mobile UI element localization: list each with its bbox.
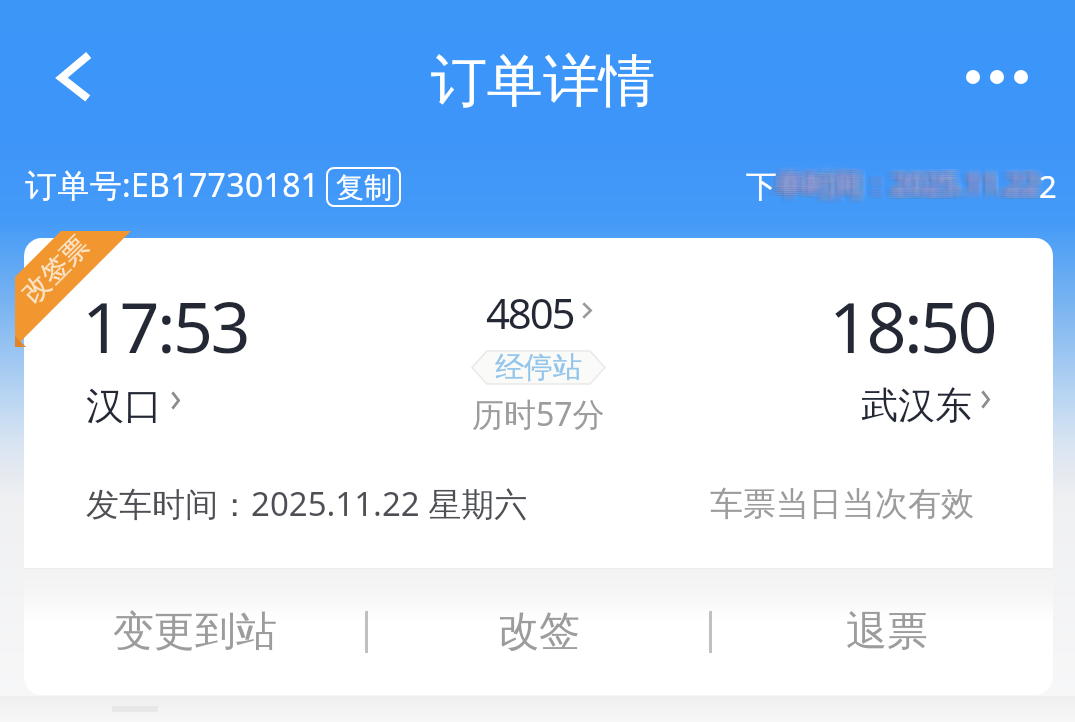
staticText: 单时间：2025.11.22 19:5 — [771, 165, 1043, 209]
staticText: 单时间：2025.11.22 19:5 — [778, 166, 1050, 210]
staticText: 单时间：2025.11.22 19:5 — [778, 161, 1050, 205]
staticText: 单时间：2025.11.22 19:5 — [776, 162, 1048, 206]
staticText: 单时间：2025.11.22 19:5 — [779, 162, 1051, 206]
staticText: 单时间：2025.11.22 19:5 — [773, 163, 1045, 207]
staticText: 单时间：2025.11.22 19:5 — [773, 159, 1045, 203]
staticText: 单时间：2025.11.22 19:5 — [773, 168, 1045, 212]
staticText: 单时间：2025.11.22 19:5 — [769, 166, 1041, 210]
staticText: 单时间：2025.11.22 19:5 — [779, 164, 1051, 208]
staticText: 单时间：2025.11.22 19:5 — [781, 159, 1053, 203]
staticText: 18:50 — [829, 278, 995, 373]
staticText: 单时间：2025.11.22 19:5 — [775, 161, 1047, 205]
staticText: 单时间：2025.11.22 19:5 — [772, 162, 1044, 206]
staticText: 单时间：2025.11.22 19:5 — [771, 161, 1043, 205]
staticText: 订单详情 — [431, 46, 655, 117]
button[interactable]: 改签 — [368, 569, 709, 695]
button[interactable]: 退票 — [712, 569, 1053, 695]
staticText: 单时间：2025.11.22 19:5 — [778, 159, 1050, 203]
staticText: 单时间：2025.11.22 19:5 — [778, 168, 1050, 212]
staticText: 单时间：2025.11.22 19:5 — [775, 162, 1047, 206]
staticText: 单时间：2025.11.22 19:5 — [780, 161, 1052, 205]
staticText: 单时间：2025.11.22 19:5 — [768, 162, 1040, 206]
staticText: 单时间：2025.11.22 19:5 — [774, 167, 1046, 211]
staticText: 单时间：2025.11.22 19:5 — [779, 167, 1051, 211]
staticText: 单时间：2025.11.22 19:5 — [777, 160, 1049, 204]
staticText: 单时间：2025.11.22 19:5 — [777, 161, 1049, 205]
staticText: 单时间：2025.11.22 19:5 — [776, 163, 1048, 207]
staticText: 2 — [1039, 165, 1057, 207]
staticText: 单时间：2025.11.22 19:5 — [774, 165, 1046, 209]
staticText: 单时间：2025.11.22 19:5 — [771, 163, 1043, 207]
staticText: 单时间：2025.11.22 19:5 — [776, 168, 1048, 212]
staticText: 单时间：2025.11.22 19:5 — [780, 167, 1052, 211]
staticText: 单时间：2025.11.22 19:5 — [772, 161, 1044, 205]
staticText: 单时间：2025.11.22 19:5 — [772, 165, 1044, 209]
staticText: 单时间：2025.11.22 19:5 — [768, 166, 1040, 210]
staticText: 单时间：2025.11.22 19:5 — [770, 165, 1042, 209]
staticText: 单时间：2025.11.22 19:5 — [773, 165, 1045, 209]
staticText: 单时间：2025.11.22 19:5 — [776, 159, 1048, 203]
staticText: 单时间：2025.11.22 19:5 — [770, 168, 1042, 212]
staticText: 单时间：2025.11.22 19:5 — [781, 165, 1053, 209]
button[interactable]: 复制 — [327, 168, 400, 206]
staticText: 单时间：2025.11.22 19:5 — [775, 163, 1047, 207]
staticText: 单时间：2025.11.22 19:5 — [768, 160, 1040, 204]
staticText: 单时间：2025.11.22 19:5 — [780, 168, 1052, 212]
staticText: 单时间：2025.11.22 19:5 — [774, 164, 1046, 208]
staticText: 单时间：2025.11.22 19:5 — [775, 167, 1047, 211]
staticText: 单时间：2025.11.22 19:5 — [776, 167, 1048, 211]
staticText: 变更到站 — [113, 606, 277, 658]
staticText: 单时间：2025.11.22 19:5 — [776, 164, 1048, 208]
staticText: 单时间：2025.11.22 19:5 — [770, 160, 1042, 204]
staticText: 单时间：2025.11.22 19:5 — [769, 168, 1041, 212]
staticText: 单时间：2025.11.22 19:5 — [777, 164, 1049, 208]
staticText: 下 — [746, 167, 777, 206]
staticText: 单时间：2025.11.22 19:5 — [773, 167, 1045, 211]
staticText: 单时间：2025.11.22 19:5 — [772, 160, 1044, 204]
staticText: 单时间：2025.11.22 19:5 — [774, 168, 1046, 212]
staticText: 单时间：2025.11.22 19:5 — [775, 159, 1047, 203]
staticText: 单时间：2025.11.22 19:5 — [777, 167, 1049, 211]
staticText: 单时间：2025.11.22 19:5 — [770, 164, 1042, 208]
staticText: 单时间：2025.11.22 19:5 — [779, 166, 1051, 210]
staticText: 单时间：2025.11.22 19:5 — [770, 163, 1042, 207]
staticText: 改签票 — [15, 229, 96, 310]
staticText: 单时间：2025.11.22 19:5 — [780, 164, 1052, 208]
staticText: 单时间：2025.11.22 19:5 — [770, 162, 1042, 206]
staticText: 单时间：2025.11.22 19:5 — [777, 165, 1049, 209]
staticText: 单时间：2025.11.22 19:5 — [775, 166, 1047, 210]
staticText: 单时间：2025.11.22 19:5 — [772, 168, 1044, 212]
staticText: 单时间：2025.11.22 19:5 — [780, 163, 1052, 207]
staticText: 单时间：2025.11.22 19:5 — [772, 167, 1044, 211]
staticText: 单时间：2025.11.22 19:5 — [781, 161, 1053, 205]
button[interactable]: 变更到站 — [24, 569, 365, 695]
button[interactable]: More options — [955, 49, 1039, 105]
staticText: 单时间：2025.11.22 19:5 — [778, 164, 1050, 208]
staticText: 单时间：2025.11.22 19:5 — [770, 159, 1042, 203]
staticText: 单时间：2025.11.22 19:5 — [774, 166, 1046, 210]
staticText: 单时间：2025.11.22 19:5 — [778, 167, 1050, 211]
staticText: 单时间：2025.11.22 19:5 — [780, 165, 1052, 209]
staticText: 单时间：2025.11.22 19:5 — [780, 160, 1052, 204]
staticText: 单时间：2025.11.22 19:5 — [773, 166, 1045, 210]
staticText: 单时间：2025.11.22 19:5 — [781, 167, 1053, 211]
staticText: 单时间：2025.11.22 19:5 — [779, 159, 1051, 203]
staticText: 单时间：2025.11.22 19:5 — [776, 165, 1048, 209]
staticText: 单时间：2025.11.22 19:5 — [777, 163, 1049, 207]
staticText: 单时间：2025.11.22 19:5 — [770, 166, 1042, 210]
staticText: 单时间：2025.11.22 19:5 — [773, 162, 1045, 206]
staticText: 退票 — [846, 606, 928, 658]
staticText: 单时间：2025.11.22 19:5 — [771, 166, 1043, 210]
staticText: 单时间：2025.11.22 19:5 — [778, 165, 1050, 209]
staticText: 单时间：2025.11.22 19:5 — [768, 168, 1040, 212]
staticText: 单时间：2025.11.22 19:5 — [779, 168, 1051, 212]
staticText: 单时间：2025.11.22 19:5 — [771, 167, 1043, 211]
staticText: 单时间：2025.11.22 19:5 — [782, 163, 1054, 207]
staticText: 单时间：2025.11.22 19:5 — [771, 159, 1043, 203]
staticText: 单时间：2025.11.22 19:5 — [779, 161, 1051, 205]
staticText: 单时间：2025.11.22 19:5 — [782, 165, 1054, 209]
staticText: 单时间：2025.11.22 19:5 — [774, 160, 1046, 204]
staticText: 单时间：2025.11.22 19:5 — [771, 164, 1043, 208]
staticText: 单时间：2025.11.22 19:5 — [774, 159, 1046, 203]
button[interactable]: Back — [33, 40, 105, 112]
